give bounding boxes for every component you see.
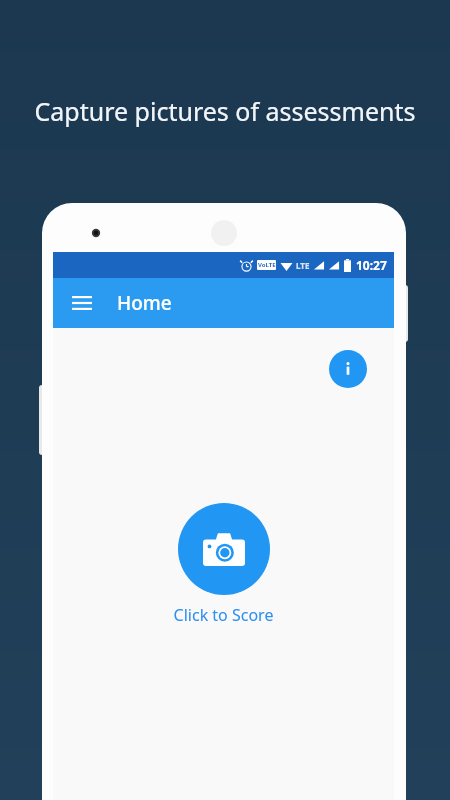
button[interactable]: Open navigation drawer	[65, 286, 99, 320]
staticText: Capture pictures of assessments	[0, 94, 450, 128]
staticText: 10:27	[356, 257, 387, 273]
staticText: LTE	[296, 260, 310, 271]
staticText: VoLTE	[258, 261, 276, 269]
button[interactable]: Information	[329, 350, 367, 388]
button[interactable]: Take picture to score	[178, 503, 270, 595]
staticText: Home	[117, 290, 172, 316]
button[interactable]: Click to Score	[53, 604, 394, 626]
